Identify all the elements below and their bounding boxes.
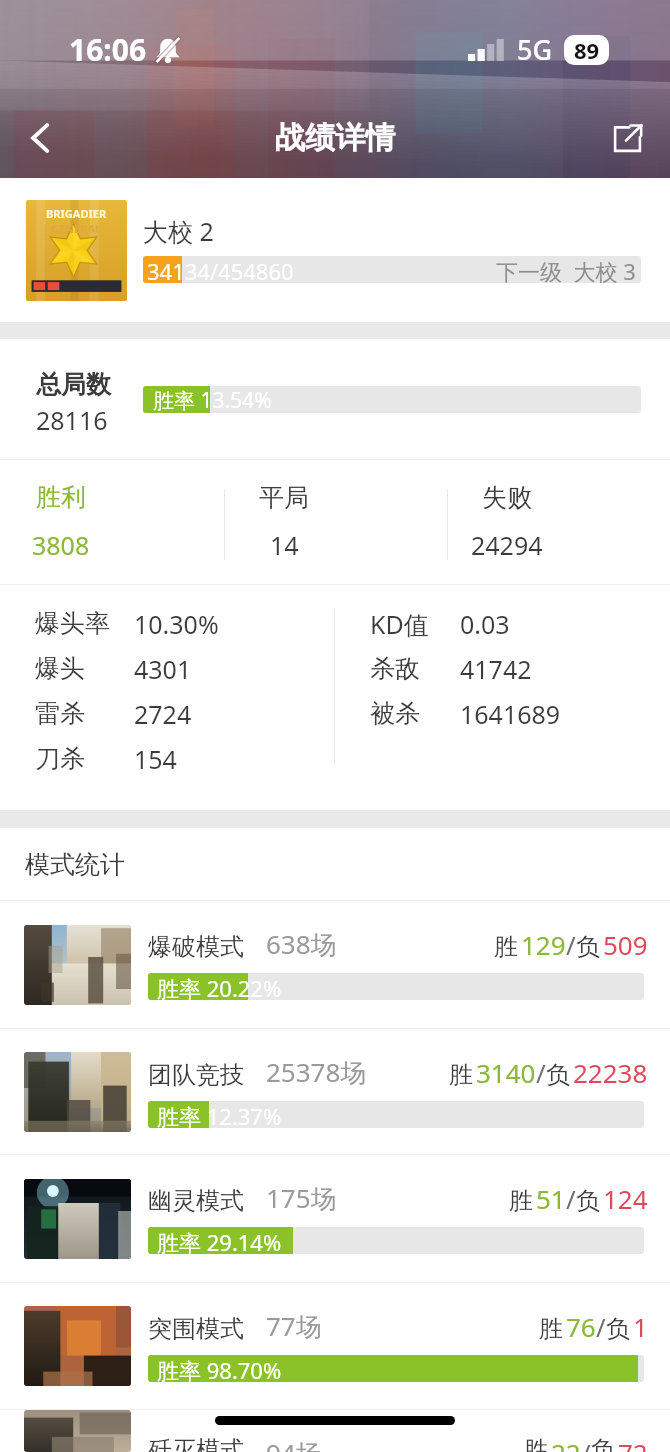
staticText: 124: [603, 1181, 648, 1216]
staticText: 杀敌: [370, 653, 420, 684]
staticText: 歼灭模式: [148, 1435, 244, 1452]
staticText: 胜: [494, 932, 518, 962]
staticText: 负: [591, 1435, 615, 1452]
staticText: 509: [603, 927, 648, 962]
staticText: 3140: [476, 1055, 536, 1090]
staticText: 被杀: [370, 698, 420, 729]
staticText: 89: [574, 35, 600, 65]
staticText: 胜利: [36, 482, 86, 513]
staticText: 负: [546, 1060, 570, 1090]
staticText: 失败: [482, 482, 532, 513]
button[interactable]: 团队竞技: [0, 1029, 670, 1154]
staticText: 1: [633, 1309, 648, 1344]
staticText: 爆头率: [35, 608, 110, 639]
staticText: GENERAL: [51, 221, 102, 236]
button[interactable]: 失败: [446, 460, 568, 584]
staticText: 77场: [266, 1308, 322, 1344]
staticText: 负: [576, 932, 600, 962]
staticText: 94场: [266, 1435, 322, 1452]
button[interactable]: 爆破模式: [0, 901, 670, 1028]
staticText: 24294: [471, 528, 543, 562]
staticText: 爆破模式: [148, 932, 244, 962]
staticText: 胜: [524, 1435, 548, 1452]
staticText: 175场: [266, 1180, 337, 1216]
staticText: 胜率 98.70%: [157, 1355, 282, 1382]
staticText: /: [566, 1181, 576, 1216]
staticText: KD值: [370, 607, 429, 641]
button[interactable]: 歼灭模式: [0, 1410, 670, 1452]
staticText: 胜率 12.37%: [157, 1101, 282, 1128]
staticText: 胜率 29.14%: [157, 1227, 282, 1254]
staticText: 3808: [32, 528, 90, 562]
staticText: /: [581, 1435, 591, 1452]
staticText: 14: [270, 528, 299, 562]
staticText: 51: [536, 1181, 566, 1216]
staticText: 22238: [573, 1055, 648, 1090]
staticText: 大校 2: [143, 214, 214, 248]
staticText: 0.03: [460, 607, 510, 641]
staticText: 突围模式: [148, 1314, 244, 1344]
staticText: 25378场: [266, 1054, 367, 1090]
staticText: 22: [551, 1435, 581, 1452]
staticText: 28116: [36, 403, 108, 437]
staticText: 胜: [539, 1314, 563, 1344]
staticText: 幽灵模式: [148, 1186, 244, 1216]
staticText: 4301: [134, 652, 192, 686]
staticText: 平局: [259, 482, 309, 513]
button[interactable]: BRIGADIER: [0, 178, 670, 322]
staticText: 下一级 大校 3: [496, 256, 636, 283]
staticText: 5G: [517, 31, 553, 68]
staticText: /: [566, 927, 576, 962]
staticText: 团队竞技: [148, 1060, 244, 1090]
staticText: BRIGADIER: [46, 206, 107, 221]
button[interactable]: 突围模式: [0, 1283, 670, 1409]
staticText: 34134/454860: [147, 256, 294, 283]
staticText: 胜: [449, 1060, 473, 1090]
button[interactable]: Back: [0, 98, 82, 178]
staticText: 154: [134, 742, 177, 776]
staticText: 76: [566, 1309, 596, 1344]
staticText: 总局数: [36, 369, 111, 400]
button[interactable]: 平局: [223, 460, 345, 584]
staticText: 负: [576, 1186, 600, 1216]
button[interactable]: 胜利: [0, 460, 122, 584]
staticText: 10.30%: [134, 607, 219, 641]
staticText: 16:06: [69, 29, 147, 70]
staticText: 胜率 20.22%: [157, 973, 282, 1000]
staticText: 72: [618, 1435, 648, 1452]
staticText: 1641689: [460, 697, 561, 731]
staticText: 模式统计: [25, 849, 125, 880]
staticText: 638场: [266, 926, 337, 962]
staticText: /: [596, 1309, 606, 1344]
staticText: 41742: [460, 652, 532, 686]
staticText: 战绩详情: [275, 119, 395, 157]
staticText: 胜率 13.54%: [153, 386, 272, 413]
staticText: 雷杀: [35, 698, 85, 729]
staticText: 负: [606, 1314, 630, 1344]
button[interactable]: 幽灵模式: [0, 1155, 670, 1282]
staticText: /: [536, 1055, 546, 1090]
staticText: 爆头: [35, 653, 85, 684]
staticText: 2724: [134, 697, 192, 731]
staticText: 胜: [509, 1186, 533, 1216]
staticText: 129: [521, 927, 566, 962]
staticText: 刀杀: [35, 743, 85, 774]
button[interactable]: Share: [584, 98, 670, 178]
